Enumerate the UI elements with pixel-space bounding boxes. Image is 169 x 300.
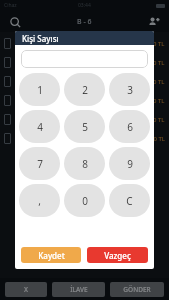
staticText: 85,00 TL [141, 78, 165, 86]
button[interactable]: Pizza [4, 72, 165, 91]
staticText: 40,00 TL [141, 97, 165, 105]
staticText: X [24, 285, 28, 294]
button[interactable]: Search [6, 13, 24, 31]
staticText: Çay [15, 131, 26, 139]
button[interactable]: 2 [64, 73, 105, 106]
staticText: Kaydet [38, 250, 65, 261]
button[interactable]: , [19, 184, 60, 217]
staticText: Cola [15, 36, 28, 44]
staticText: 25,00 TL [141, 116, 165, 124]
button[interactable]: 7 [19, 147, 60, 180]
button[interactable]: Add person [145, 13, 163, 31]
staticText: , [38, 194, 41, 208]
button[interactable]: 4 [19, 110, 60, 143]
button[interactable]: Vazgeç [87, 247, 148, 263]
staticText: B - 6 [77, 17, 92, 27]
staticText: 1 adet [15, 82, 30, 89]
staticText: Pizza [15, 74, 30, 82]
staticText: İLAVE [70, 285, 88, 294]
staticText: 3 [127, 83, 133, 97]
staticText: 1 adet [15, 101, 30, 108]
button[interactable]: Kaydet [21, 247, 81, 263]
button[interactable]: 1 [19, 73, 60, 106]
staticText: 1 adet [15, 44, 30, 51]
staticText: 4 [37, 120, 43, 134]
button[interactable]: X [5, 282, 47, 297]
staticText: 1 [37, 83, 43, 97]
button[interactable]: 5 [64, 110, 105, 143]
staticText: 6 [127, 120, 133, 134]
button[interactable]: Salata [4, 91, 165, 110]
staticText: 0 [82, 194, 88, 208]
staticText: 12,00 TL [141, 40, 165, 48]
staticText: 9 [127, 157, 133, 171]
button[interactable]: Çay [4, 129, 165, 148]
button[interactable]: 9 [109, 147, 150, 180]
button[interactable]: İLAVE [52, 282, 105, 297]
staticText: 8,00 TL [145, 135, 165, 143]
staticText: Vazgeç [104, 250, 131, 261]
staticText: GÖNDER [123, 285, 151, 294]
button[interactable] [21, 50, 148, 68]
staticText: 8 [82, 157, 88, 171]
staticText: 03:44 [78, 2, 91, 9]
staticText: 1 adet [15, 139, 30, 146]
staticText: 2 [82, 83, 88, 97]
staticText: Kahve [15, 112, 33, 120]
button[interactable]: Fanta [4, 53, 165, 72]
staticText: Salata [15, 93, 33, 101]
staticText: C [126, 194, 133, 208]
button[interactable]: Kahve [4, 110, 165, 129]
button[interactable]: 6 [109, 110, 150, 143]
button[interactable]: C [109, 184, 150, 217]
button[interactable]: 3 [109, 73, 150, 106]
staticText: 10,00 TL [141, 59, 165, 67]
button[interactable]: 8 [64, 147, 105, 180]
button[interactable]: Cola [4, 34, 165, 53]
staticText: 1 adet [15, 120, 30, 127]
staticText: Cihaz [4, 2, 17, 9]
button[interactable]: 0 [64, 184, 105, 217]
button[interactable]: GÖNDER [110, 282, 164, 297]
staticText: 7 [37, 157, 43, 171]
staticText: 1 adet [15, 63, 30, 70]
staticText: Kişi Sayısı [22, 33, 59, 44]
staticText: 5 [82, 120, 88, 134]
staticText: Fanta [15, 55, 31, 63]
